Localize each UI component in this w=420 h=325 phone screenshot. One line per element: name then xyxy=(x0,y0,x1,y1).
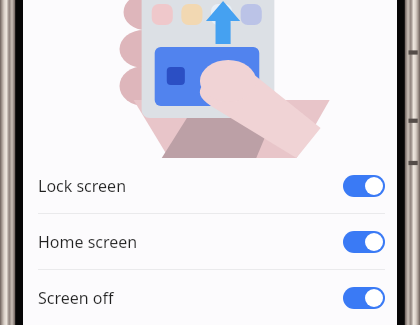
button[interactable]: Screen off xyxy=(23,270,397,325)
staticText: Lock screen xyxy=(38,175,343,197)
button[interactable]: Toggle, on xyxy=(343,175,385,197)
button[interactable]: Home screen xyxy=(23,214,397,269)
staticText: Home screen xyxy=(38,231,343,253)
button[interactable]: Lock screen xyxy=(23,158,397,213)
staticText: Screen off xyxy=(38,287,343,309)
button[interactable]: Toggle, on xyxy=(343,287,385,309)
button[interactable]: Toggle, on xyxy=(343,231,385,253)
